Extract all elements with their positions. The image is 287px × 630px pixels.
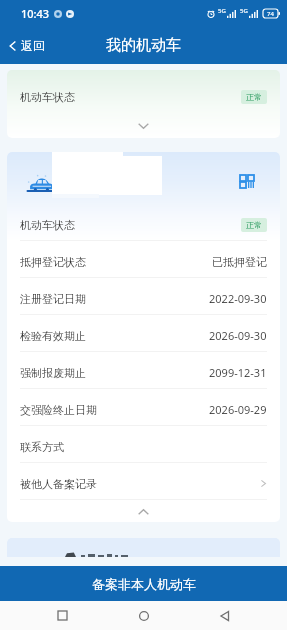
staticText: 返回 xyxy=(21,38,45,53)
button[interactable]: 返回 xyxy=(0,30,54,61)
button[interactable] xyxy=(7,538,280,557)
staticText: 2022-09-30 xyxy=(209,291,267,306)
staticText: 我的机动车 xyxy=(106,36,181,55)
button[interactable]: Back xyxy=(205,601,245,630)
staticText: 正常 xyxy=(246,220,262,230)
staticText: 5G xyxy=(218,7,226,15)
button[interactable]: Recents xyxy=(42,601,82,630)
button[interactable]: 注册登记日期 xyxy=(7,278,280,315)
button[interactable]: 备案非本人机动车 xyxy=(0,566,287,601)
staticText: 10:43 xyxy=(21,6,50,21)
staticText: 74 xyxy=(267,10,274,18)
button[interactable]: 交强险终止日期 xyxy=(7,389,280,426)
staticText: 2026-09-30 xyxy=(209,328,267,343)
button[interactable]: 联系方式 xyxy=(7,426,280,463)
staticText: 强制报废期止 xyxy=(20,366,86,380)
staticText: 注册登记日期 xyxy=(20,292,86,306)
staticText: 正常 xyxy=(246,92,262,102)
button[interactable]: Home xyxy=(124,601,164,630)
staticText: 2026-09-29 xyxy=(209,402,267,417)
button[interactable]: 强制报废期止 xyxy=(7,352,280,389)
button[interactable]: 机动车状态 xyxy=(7,204,280,241)
button[interactable]: 检验有效期止 xyxy=(7,315,280,352)
other: 扫码 xyxy=(240,175,254,188)
staticText: 被他人备案记录 xyxy=(20,477,97,491)
staticText: 备案非本人机动车 xyxy=(92,576,196,592)
staticText: 检验有效期止 xyxy=(20,329,86,343)
button[interactable]: 被他人备案记录 xyxy=(7,463,280,500)
button[interactable]: 机动车状态 xyxy=(7,70,280,138)
staticText: 联系方式 xyxy=(20,440,64,454)
staticText: 2099-12-31 xyxy=(209,365,267,380)
staticText: 已抵押登记 xyxy=(212,255,267,269)
button[interactable]: 抵押登记状态 xyxy=(7,241,280,278)
staticText: 5G xyxy=(240,7,248,15)
staticText: 机动车状态 xyxy=(20,218,75,232)
staticText: 机动车状态 xyxy=(20,90,75,104)
staticText: 交强险终止日期 xyxy=(20,403,97,417)
staticText: 抵押登记状态 xyxy=(20,255,86,269)
